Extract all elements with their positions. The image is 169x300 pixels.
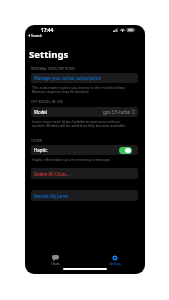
button[interactable]: Chats <box>25 251 85 266</box>
staticText: Model <box>34 109 47 115</box>
staticText: RENEWAL SUBSCRIPTIONS <box>31 66 75 71</box>
staticText: OTHER <box>31 138 43 143</box>
button[interactable]: Haptic toggle <box>119 147 132 154</box>
staticText: Settings <box>29 48 69 61</box>
staticText: Chats <box>51 262 60 266</box>
button[interactable]: Delete All Chats... <box>31 168 138 179</box>
staticText: Haptic <box>34 147 48 153</box>
staticText: Haptic effect when you're receiving a me… <box>32 157 112 162</box>
staticText: gpt-3.5-turbo <box>103 109 131 115</box>
staticText: Manage your active subscription <box>34 75 102 81</box>
button[interactable]: Settings <box>85 251 145 266</box>
staticText: 17:44 <box>41 27 54 34</box>
button[interactable]: Manage your active subscription <box>31 73 138 83</box>
button[interactable]: Haptic <box>31 145 138 155</box>
staticText: Search <box>31 33 43 38</box>
button[interactable]: Model <box>31 107 138 117</box>
button[interactable]: Revoke My Jarvis <box>31 190 138 201</box>
staticText: This subscription gives you access to th… <box>32 85 126 95</box>
staticText: GPT MODEL IN USE <box>31 99 63 104</box>
staticText: Learn more here: https://platform.openai… <box>32 119 127 129</box>
staticText: Settings <box>109 262 121 266</box>
staticText: Revoke My Jarvis <box>34 193 69 199</box>
staticText: Delete All Chats... <box>34 171 70 177</box>
